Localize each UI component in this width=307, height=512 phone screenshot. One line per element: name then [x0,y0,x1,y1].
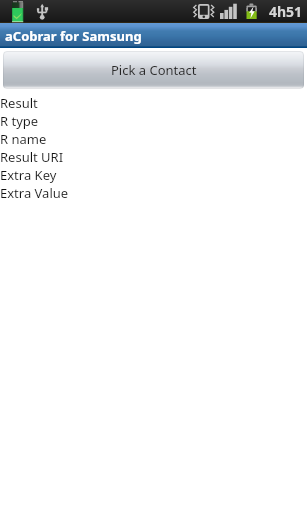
staticText: Pick a Contact [111,61,197,79]
staticText: 4h51 [269,2,303,21]
button[interactable]: Pick a Contact [3,51,304,89]
staticText: R name [0,130,47,148]
staticText: R type [0,112,39,130]
staticText: aCobrar for Samsung [5,27,142,45]
other: Battery full [12,0,28,23]
other: Signal strength [220,0,240,23]
staticText: Extra Value [0,184,69,202]
staticText: Result URI [0,148,64,166]
staticText: Extra Key [0,166,57,184]
other: Battery charging [246,0,260,23]
staticText: Result [0,94,38,112]
other: USB connected [35,0,51,23]
other: Vibrate mode [192,0,214,23]
